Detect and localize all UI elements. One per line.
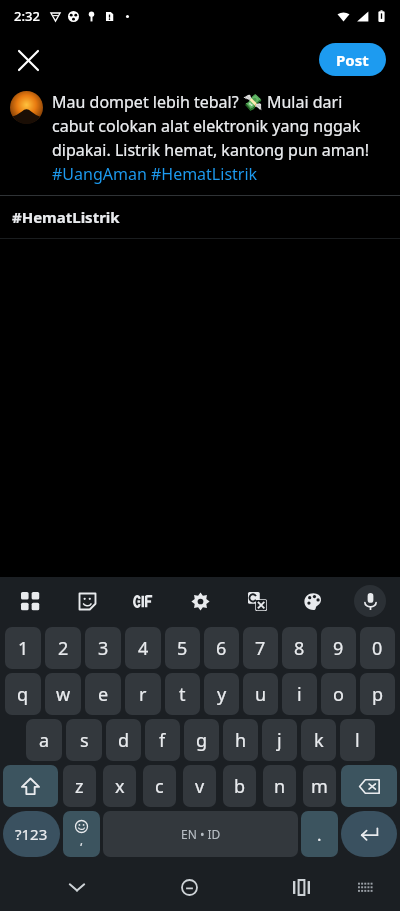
button[interactable]: Enter (341, 811, 397, 857)
button[interactable]: Home (169, 867, 209, 907)
button[interactable]: Themes (297, 585, 329, 617)
button[interactable]: y (204, 673, 239, 715)
staticText: i (297, 682, 302, 707)
staticText: 8 (294, 636, 305, 661)
button[interactable]: d (106, 719, 141, 761)
button[interactable]: 2 (45, 627, 81, 669)
staticText: ?123 (15, 824, 48, 844)
button[interactable]: Stickers (71, 585, 103, 617)
staticText: 2 (58, 636, 69, 661)
button[interactable]: GIF (127, 585, 159, 617)
button[interactable]: 5 (165, 627, 200, 669)
staticText: u (255, 682, 267, 707)
staticText: q (17, 682, 29, 707)
button[interactable]: Recent apps (281, 867, 321, 907)
button[interactable]: Close (6, 38, 50, 82)
button[interactable]: c (143, 765, 176, 807)
staticText: y (217, 682, 227, 707)
staticText: 0 (372, 636, 383, 661)
button[interactable]: 3 (85, 627, 121, 669)
staticText: w (56, 682, 71, 707)
button[interactable]: j (262, 719, 297, 761)
button[interactable]: s (66, 719, 102, 761)
staticText: z (75, 774, 84, 799)
button[interactable]: l (340, 719, 375, 761)
button[interactable]: k (301, 719, 336, 761)
button[interactable]: m (303, 765, 336, 807)
staticText: a (39, 728, 50, 753)
button[interactable]: v (183, 765, 216, 807)
button[interactable]: x (103, 765, 136, 807)
staticText: 6 (216, 636, 227, 661)
button[interactable]: p (360, 673, 395, 715)
staticText: 1 (18, 636, 29, 661)
staticText: e (98, 682, 109, 707)
button[interactable]: 0 (360, 627, 395, 669)
staticText: . (317, 823, 322, 846)
staticText: 9 (333, 636, 344, 661)
staticText: EN • ID (181, 826, 221, 842)
button[interactable]: Shift (3, 765, 58, 807)
staticText: 4 (138, 636, 149, 661)
button[interactable]: 9 (321, 627, 356, 669)
button[interactable]: Voice input (354, 585, 386, 617)
button[interactable]: u (243, 673, 278, 715)
button[interactable]: Switch keyboard (347, 869, 383, 905)
button[interactable]: g (184, 719, 219, 761)
staticText: t (179, 682, 186, 707)
button[interactable]: 1 (5, 627, 41, 669)
button[interactable]: Backspace (341, 765, 397, 807)
button[interactable]: 4 (125, 627, 161, 669)
button[interactable]: h (223, 719, 258, 761)
button[interactable]: e (85, 673, 121, 715)
staticText: p (372, 682, 384, 707)
button[interactable]: r (125, 673, 161, 715)
button[interactable]: 8 (282, 627, 317, 669)
staticText: c (155, 774, 164, 799)
button[interactable]: i (282, 673, 317, 715)
staticText: x (115, 774, 125, 799)
staticText: j (277, 728, 282, 753)
button[interactable]: o (321, 673, 356, 715)
button[interactable]: 6 (204, 627, 239, 669)
button[interactable]: ?123 (3, 811, 60, 857)
button[interactable]: t (165, 673, 200, 715)
button[interactable]: a (26, 719, 62, 761)
button[interactable]: w (45, 673, 81, 715)
staticText: f (159, 728, 166, 753)
staticText: 7 (255, 636, 266, 661)
button[interactable]: EN • ID (103, 811, 298, 857)
staticText: Post (336, 50, 369, 70)
staticText: r (139, 682, 147, 707)
staticText: n (274, 774, 286, 799)
button[interactable]: Settings (184, 585, 216, 617)
staticText: g (196, 728, 208, 753)
button[interactable]: Apps (14, 585, 46, 617)
button[interactable]: z (63, 765, 96, 807)
button[interactable]: Profile picture (10, 91, 43, 124)
button[interactable]: q (5, 673, 41, 715)
button[interactable]: Emoji (63, 811, 100, 857)
staticText: Mau dompet lebih tebal? 💸 Mulai dari cab… (52, 91, 386, 185)
staticText: v (195, 774, 205, 799)
button[interactable]: Post (319, 43, 386, 76)
staticText: 3 (98, 636, 109, 661)
staticText: o (333, 682, 344, 707)
button[interactable]: 7 (243, 627, 278, 669)
staticText: l (355, 728, 360, 753)
staticText: d (118, 728, 130, 753)
staticText: s (80, 728, 89, 753)
staticText: h (235, 728, 247, 753)
staticText: 2:32 (14, 7, 40, 25)
button[interactable]: #HematListrik (0, 196, 400, 238)
button[interactable]: Hide keyboard (57, 867, 97, 907)
staticText: k (314, 728, 324, 753)
button[interactable]: b (223, 765, 256, 807)
button[interactable]: Translate (241, 585, 273, 617)
staticText: 5 (177, 636, 188, 661)
button[interactable]: . (301, 811, 338, 857)
staticText: #HematListrik (12, 207, 120, 227)
staticText: m (311, 774, 328, 799)
button[interactable]: n (263, 765, 296, 807)
button[interactable]: f (145, 719, 180, 761)
